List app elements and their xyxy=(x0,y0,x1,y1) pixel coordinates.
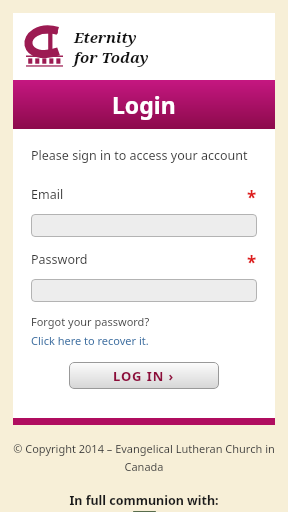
staticText: Eternity xyxy=(74,27,137,47)
button[interactable]: LOG IN › xyxy=(69,362,219,389)
other: ELCIC logo xyxy=(26,26,63,67)
button[interactable]: Email input xyxy=(31,214,257,237)
staticText: In full communion with: xyxy=(0,492,288,509)
staticText: Click here to recover it. xyxy=(31,333,149,348)
staticText: Login xyxy=(112,89,176,120)
staticText: * xyxy=(247,251,257,274)
staticText: © Copyright 2014 – Evangelical Lutheran … xyxy=(10,441,278,474)
button[interactable]: Password input xyxy=(31,279,257,302)
staticText: Please sign in to access your account xyxy=(31,147,248,164)
button[interactable]: Click here to recover it. xyxy=(31,333,149,348)
staticText: Forgot your password? xyxy=(31,314,150,329)
staticText: Email xyxy=(31,186,64,203)
staticText: for Today xyxy=(74,47,149,67)
staticText: LOG IN › xyxy=(113,367,175,385)
staticText: * xyxy=(247,186,257,209)
staticText: Password xyxy=(31,251,88,268)
